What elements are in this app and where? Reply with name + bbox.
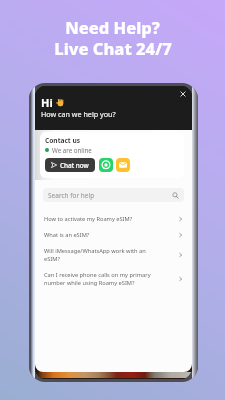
staticText: Contact us	[45, 136, 81, 145]
staticText: Search for help	[48, 191, 95, 200]
staticText: How can we help you?	[41, 109, 116, 119]
button[interactable]: Chat now	[45, 158, 95, 172]
staticText: How to activate my Roamy eSIM?	[44, 215, 156, 223]
staticText: Will iMessage/WhatsApp work with an eSIM…	[44, 247, 156, 263]
button[interactable]: How to activate my Roamy eSIM?	[44, 211, 184, 227]
staticText: We are online	[52, 146, 92, 154]
staticText: Can I receive phone calls on my primary …	[44, 271, 156, 287]
button[interactable]: Search for help	[43, 188, 184, 202]
button[interactable]: Can I receive phone calls on my primary …	[44, 267, 184, 291]
button[interactable]: What is an eSIM?	[44, 227, 184, 243]
button[interactable]: WhatsApp	[99, 158, 113, 172]
staticText: Hi	[41, 95, 53, 110]
staticText: What is an eSIM?	[44, 231, 156, 239]
staticText: Live Chat 24/7	[54, 37, 172, 59]
button[interactable]: Will iMessage/WhatsApp work with an eSIM…	[44, 243, 184, 267]
button[interactable]: Close	[179, 90, 187, 98]
button[interactable]: Email	[116, 158, 130, 172]
staticText: Chat now	[60, 161, 89, 170]
staticText: Need Help?	[65, 16, 160, 38]
